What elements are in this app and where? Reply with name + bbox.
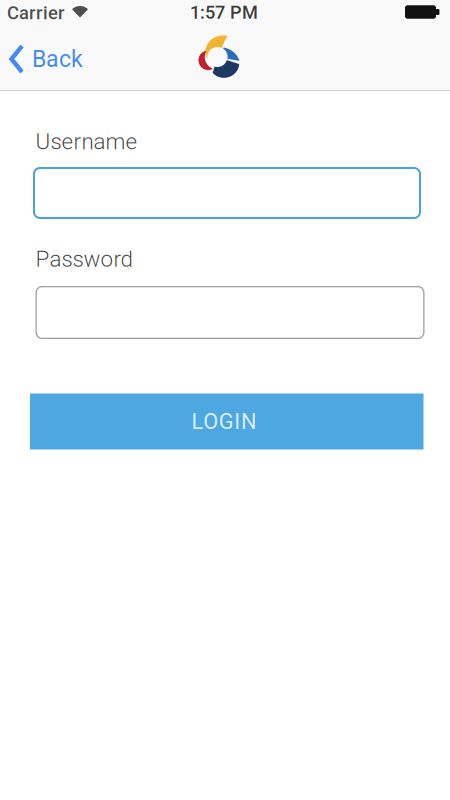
staticText: 1:57 PM — [190, 2, 258, 23]
staticText: Password — [35, 246, 132, 272]
button[interactable]: Back — [10, 45, 83, 72]
staticText: LOGIN — [192, 409, 257, 434]
button[interactable] — [33, 167, 421, 219]
staticText: Back — [32, 45, 83, 72]
button[interactable]: LOGIN — [30, 393, 423, 449]
staticText: Carrier — [7, 2, 65, 24]
button[interactable] — [35, 286, 424, 339]
staticText: Username — [35, 128, 137, 155]
